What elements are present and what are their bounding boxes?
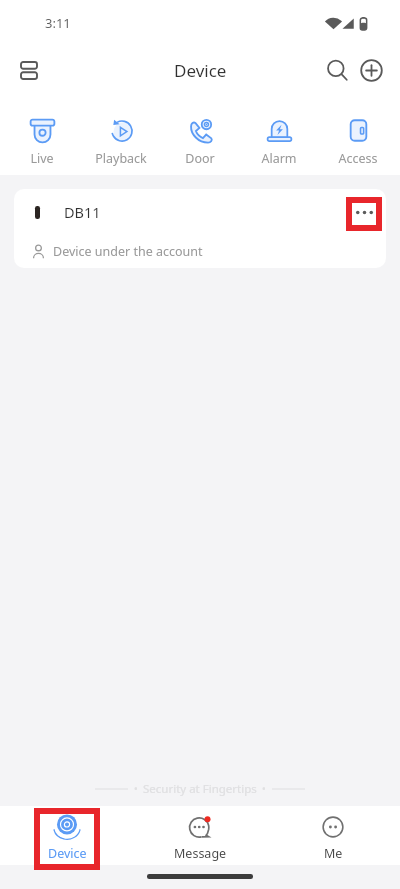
staticText: • [262, 782, 266, 796]
button[interactable]: Playback [84, 94, 158, 167]
staticText: Device under the account [53, 243, 203, 260]
button[interactable]: List view [10, 51, 48, 89]
staticText: Device [48, 845, 87, 862]
staticText: Alarm [242, 150, 316, 167]
button[interactable]: Search [320, 53, 354, 87]
staticText: DB11 [64, 202, 101, 222]
button[interactable]: More options [349, 197, 379, 227]
staticText: 3:11 [45, 14, 71, 32]
button[interactable]: Door [163, 94, 237, 167]
button[interactable]: Add [354, 53, 388, 87]
staticText: Playback [84, 150, 158, 167]
staticText: Device [174, 59, 227, 82]
staticText: Door [163, 150, 237, 167]
button[interactable]: Live [5, 94, 79, 167]
button[interactable]: Me [278, 807, 388, 865]
button[interactable]: DB11 [14, 189, 386, 268]
staticText: • [134, 782, 138, 796]
staticText: Live [5, 150, 79, 167]
button[interactable]: Device [12, 807, 122, 865]
staticText: Me [324, 845, 343, 862]
staticText: Security at Fingertips [143, 781, 257, 797]
staticText: Message [174, 845, 227, 862]
button[interactable]: Alarm [242, 94, 316, 167]
button[interactable]: Message [145, 807, 255, 865]
button[interactable]: Access [321, 94, 395, 167]
staticText: Access [321, 150, 395, 167]
